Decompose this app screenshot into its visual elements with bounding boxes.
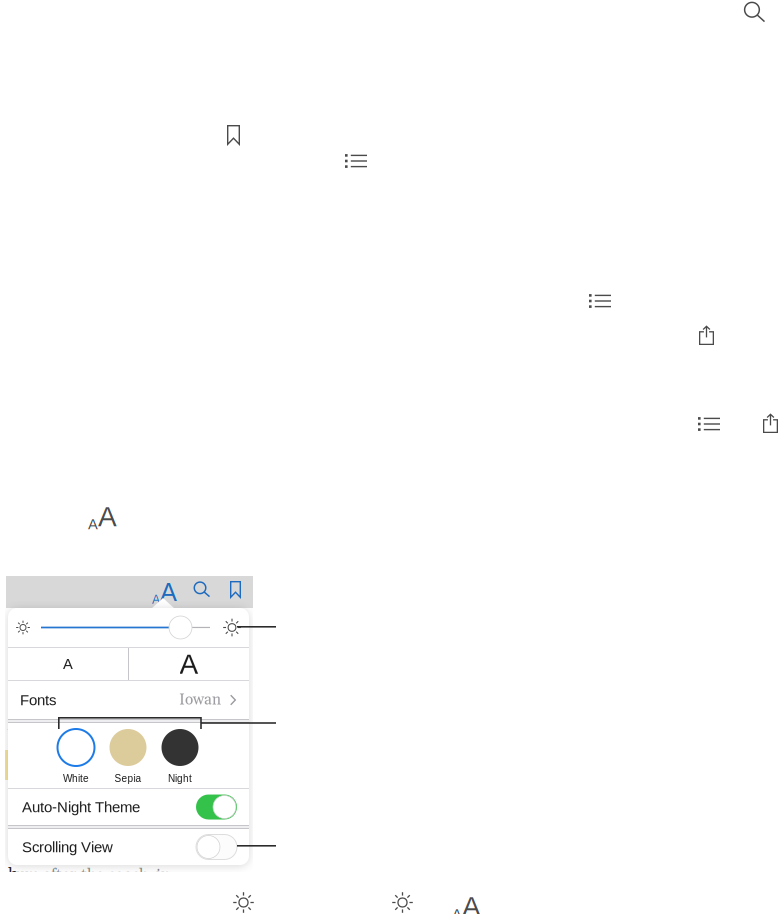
button[interactable]: Sepia [102, 723, 154, 788]
button[interactable]: Brightness [392, 892, 413, 913]
staticText: once more [8, 782, 86, 804]
button[interactable]: Table of Contents [589, 294, 611, 308]
staticText: so much [8, 752, 71, 774]
button[interactable]: White [50, 723, 102, 788]
staticText: A [63, 656, 73, 672]
button[interactable]: Brightness [233, 892, 254, 913]
button[interactable]: Bookmark [227, 125, 240, 145]
button[interactable]: Search [743, 1, 766, 24]
staticText: Iowan [179, 690, 221, 710]
staticText: of their own [8, 812, 63, 856]
staticText: A [452, 906, 462, 914]
button[interactable]: Night [154, 723, 206, 788]
staticText: A [179, 648, 198, 680]
staticText: happened [8, 864, 83, 886]
staticText: um after the coach, in [16, 865, 170, 885]
button[interactable]: Auto-Night Theme [8, 789, 249, 825]
button[interactable]: A [8, 648, 128, 680]
button[interactable]: A [129, 648, 249, 680]
staticText: A [152, 593, 160, 606]
staticText: Night [168, 773, 192, 784]
button[interactable]: Share [763, 413, 778, 433]
staticText: A [88, 516, 98, 532]
button[interactable]: Text Size [88, 501, 117, 532]
staticText: White [63, 773, 89, 784]
button[interactable]: Text Size [152, 578, 177, 606]
button[interactable]: Share [699, 325, 714, 345]
button[interactable]: Table of Contents [345, 154, 367, 168]
button[interactable]: Text Size [452, 891, 481, 914]
staticText: Fonts [20, 692, 56, 708]
staticText: A [98, 501, 117, 532]
button[interactable]: Fonts [8, 681, 249, 719]
staticText: Scrolling View [22, 839, 113, 855]
staticText: hospitable [8, 632, 87, 654]
staticText: returning [8, 662, 80, 684]
staticText: A [462, 891, 481, 914]
button[interactable]: Search [193, 581, 211, 599]
staticText: Auto-Night Theme [22, 799, 140, 815]
button[interactable]: Scrolling View [8, 829, 249, 865]
staticText: yet it was [8, 722, 79, 744]
staticText: Sepia [114, 773, 141, 784]
staticText: A [160, 578, 177, 606]
staticText: and then [8, 692, 75, 714]
button[interactable]: Table of Contents [698, 417, 720, 431]
button[interactable]: Bookmark [230, 581, 241, 598]
